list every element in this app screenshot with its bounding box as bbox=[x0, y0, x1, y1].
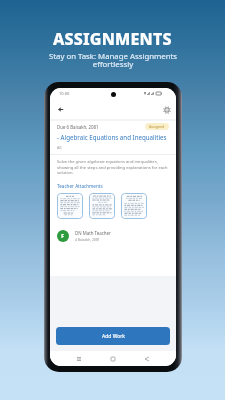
button[interactable]: Attachment bbox=[124, 195, 144, 217]
staticText: DN Math Teacher bbox=[75, 230, 111, 236]
button[interactable]: Settings bbox=[160, 103, 173, 116]
button[interactable]: Add Work bbox=[56, 327, 170, 345]
staticText: All bbox=[57, 145, 62, 150]
staticText: Stay on Task: Manage Assignments effortl… bbox=[48, 51, 178, 70]
button[interactable]: Back bbox=[142, 354, 152, 364]
staticText: 4 Baisakh, 2081 bbox=[75, 237, 100, 242]
staticText: Solve the given algebraic equations and … bbox=[57, 159, 169, 175]
button[interactable]: Back bbox=[54, 103, 67, 116]
staticText: - Algebraic Equations and Inequalities bbox=[57, 133, 167, 141]
button[interactable]: Recents bbox=[74, 354, 84, 364]
button[interactable]: Assigned bbox=[149, 124, 165, 129]
button[interactable]: Home bbox=[108, 354, 118, 364]
staticText: Due 6 Baisakh, 2081 bbox=[57, 124, 99, 130]
staticText: Teacher Attachments bbox=[57, 183, 103, 189]
button[interactable]: Attachment bbox=[60, 195, 80, 217]
staticText: 10:00 bbox=[59, 91, 70, 96]
staticText: F bbox=[61, 232, 65, 240]
staticText: ASSIGNMENTS bbox=[53, 28, 172, 50]
staticText: Add Work bbox=[102, 333, 125, 340]
staticText: Assigned bbox=[149, 124, 165, 129]
button[interactable]: Attachment bbox=[92, 195, 112, 217]
